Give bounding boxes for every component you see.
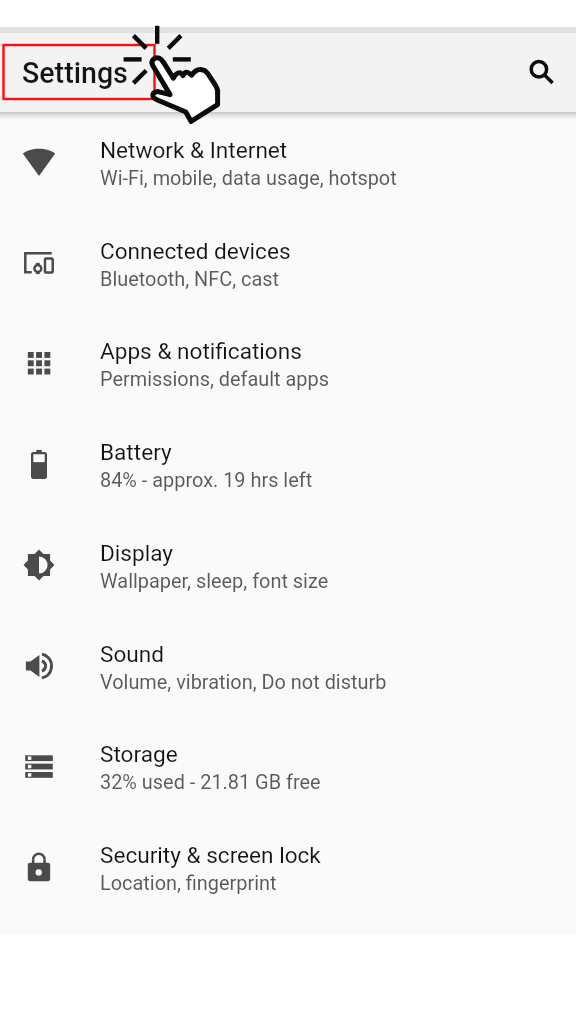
staticText: Sound: [100, 641, 164, 667]
button[interactable]: Search: [517, 48, 565, 96]
staticText: Apps & notifications: [100, 338, 302, 364]
staticText: Network & Internet: [100, 137, 288, 163]
staticText: Battery: [100, 439, 172, 465]
staticText: Storage: [100, 741, 178, 767]
staticText: Location, fingerprint: [100, 872, 277, 895]
staticText: 32% used - 21.81 GB free: [100, 771, 321, 794]
button[interactable]: [0, 523, 576, 624]
staticText: Bluetooth, NFC, cast: [100, 268, 280, 291]
staticText: Permissions, default apps: [100, 368, 329, 391]
staticText: Display: [100, 540, 173, 566]
staticText: Wi-Fi, mobile, data usage, hotspot: [100, 167, 397, 190]
staticText: Connected devices: [100, 238, 291, 264]
button[interactable]: [0, 825, 576, 926]
staticText: Settings: [22, 56, 128, 90]
button[interactable]: [0, 321, 576, 422]
staticText: Security & screen lock: [100, 842, 321, 868]
button[interactable]: [0, 422, 576, 523]
staticText: 84% - approx. 19 hrs left: [100, 469, 313, 492]
staticText: Wallpaper, sleep, font size: [100, 570, 329, 593]
button[interactable]: [0, 120, 576, 221]
button[interactable]: [0, 221, 576, 322]
staticText: Volume, vibration, Do not disturb: [100, 671, 387, 694]
button[interactable]: [0, 724, 576, 825]
button[interactable]: [0, 624, 576, 725]
